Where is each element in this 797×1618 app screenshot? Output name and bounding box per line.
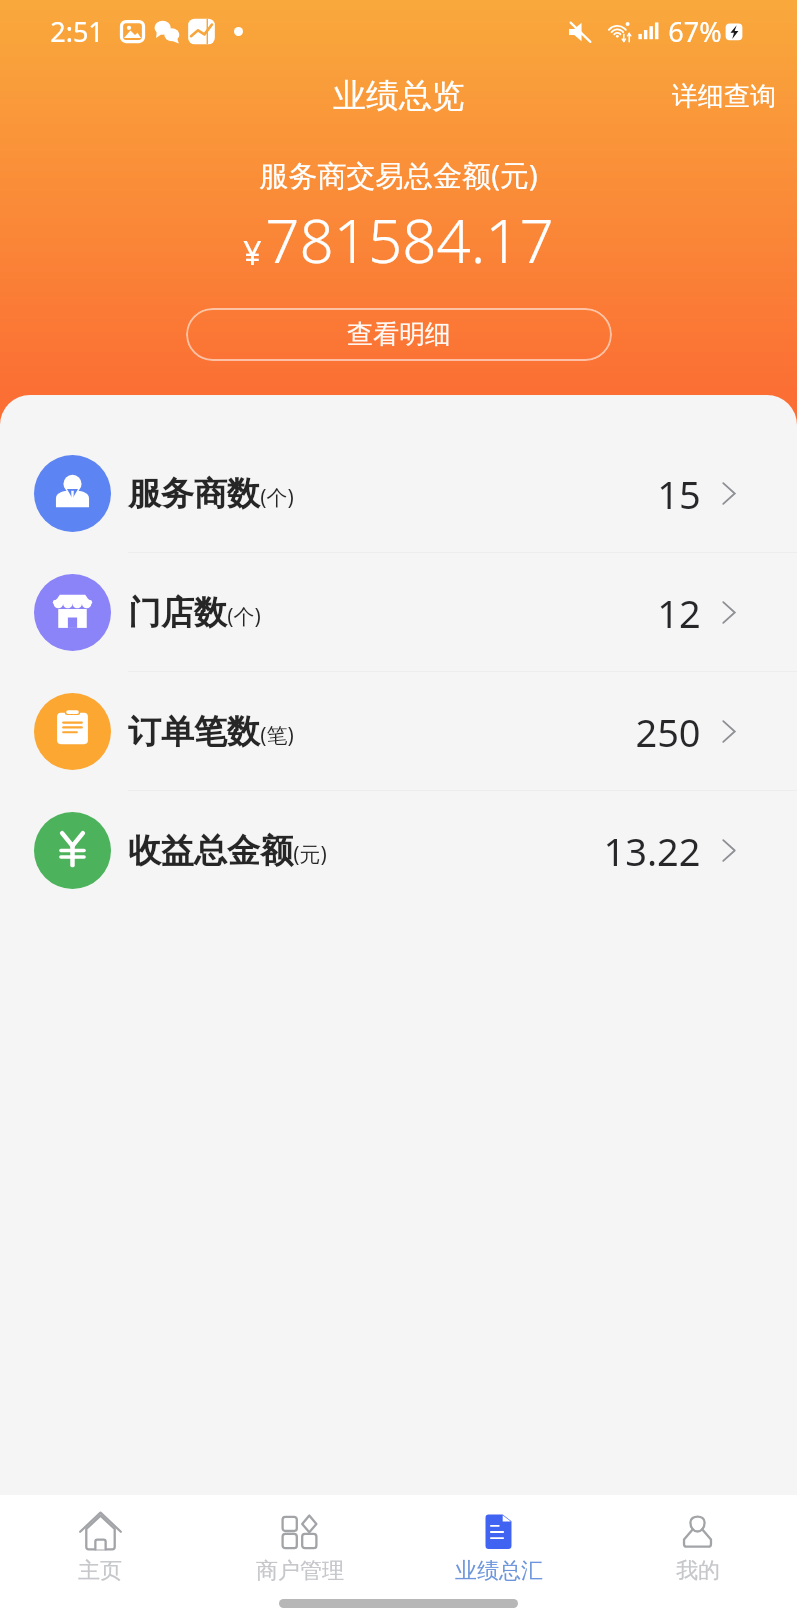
staticText: 15 [657, 468, 701, 520]
button[interactable]: 主页 [0, 1495, 200, 1585]
staticText: 服务商数 [128, 473, 260, 515]
button[interactable]: 详细查询 [652, 68, 797, 125]
staticText: 服务商交易总金额(元) [259, 155, 538, 195]
button[interactable]: 订单笔数 [0, 672, 797, 791]
button[interactable]: 我的 [598, 1495, 797, 1585]
staticText: 业绩总汇 [455, 1557, 543, 1585]
button[interactable]: 门店数 [0, 553, 797, 672]
staticText: 781584.17 [265, 199, 554, 281]
staticText: 详细查询 [672, 80, 776, 113]
staticText: 12 [657, 587, 701, 639]
staticText: 商户管理 [256, 1557, 344, 1585]
staticText: 67% [668, 13, 722, 50]
staticText: 2:51 [50, 13, 104, 50]
staticText: 13.22 [603, 825, 701, 877]
staticText: 收益总金额 [128, 830, 293, 872]
staticText: 250 [635, 706, 701, 758]
staticText: (个) [227, 602, 261, 631]
button[interactable]: 收益总金额 [0, 791, 797, 910]
button[interactable]: 业绩总汇 [399, 1495, 598, 1585]
staticText: 业绩总览 [333, 75, 465, 117]
staticText: 我的 [676, 1557, 720, 1585]
button[interactable]: 查看明细 [186, 308, 612, 361]
staticText: 查看明细 [347, 318, 451, 351]
staticText: (元) [293, 840, 327, 869]
staticText: (笔) [260, 721, 294, 750]
staticText: 主页 [78, 1557, 122, 1585]
staticText: 门店数 [128, 592, 227, 634]
staticText: 订单笔数 [128, 711, 260, 753]
button[interactable]: 商户管理 [200, 1495, 399, 1585]
staticText: ¥ [243, 231, 262, 275]
staticText: (个) [260, 483, 294, 512]
button[interactable]: 服务商数 [0, 434, 797, 553]
